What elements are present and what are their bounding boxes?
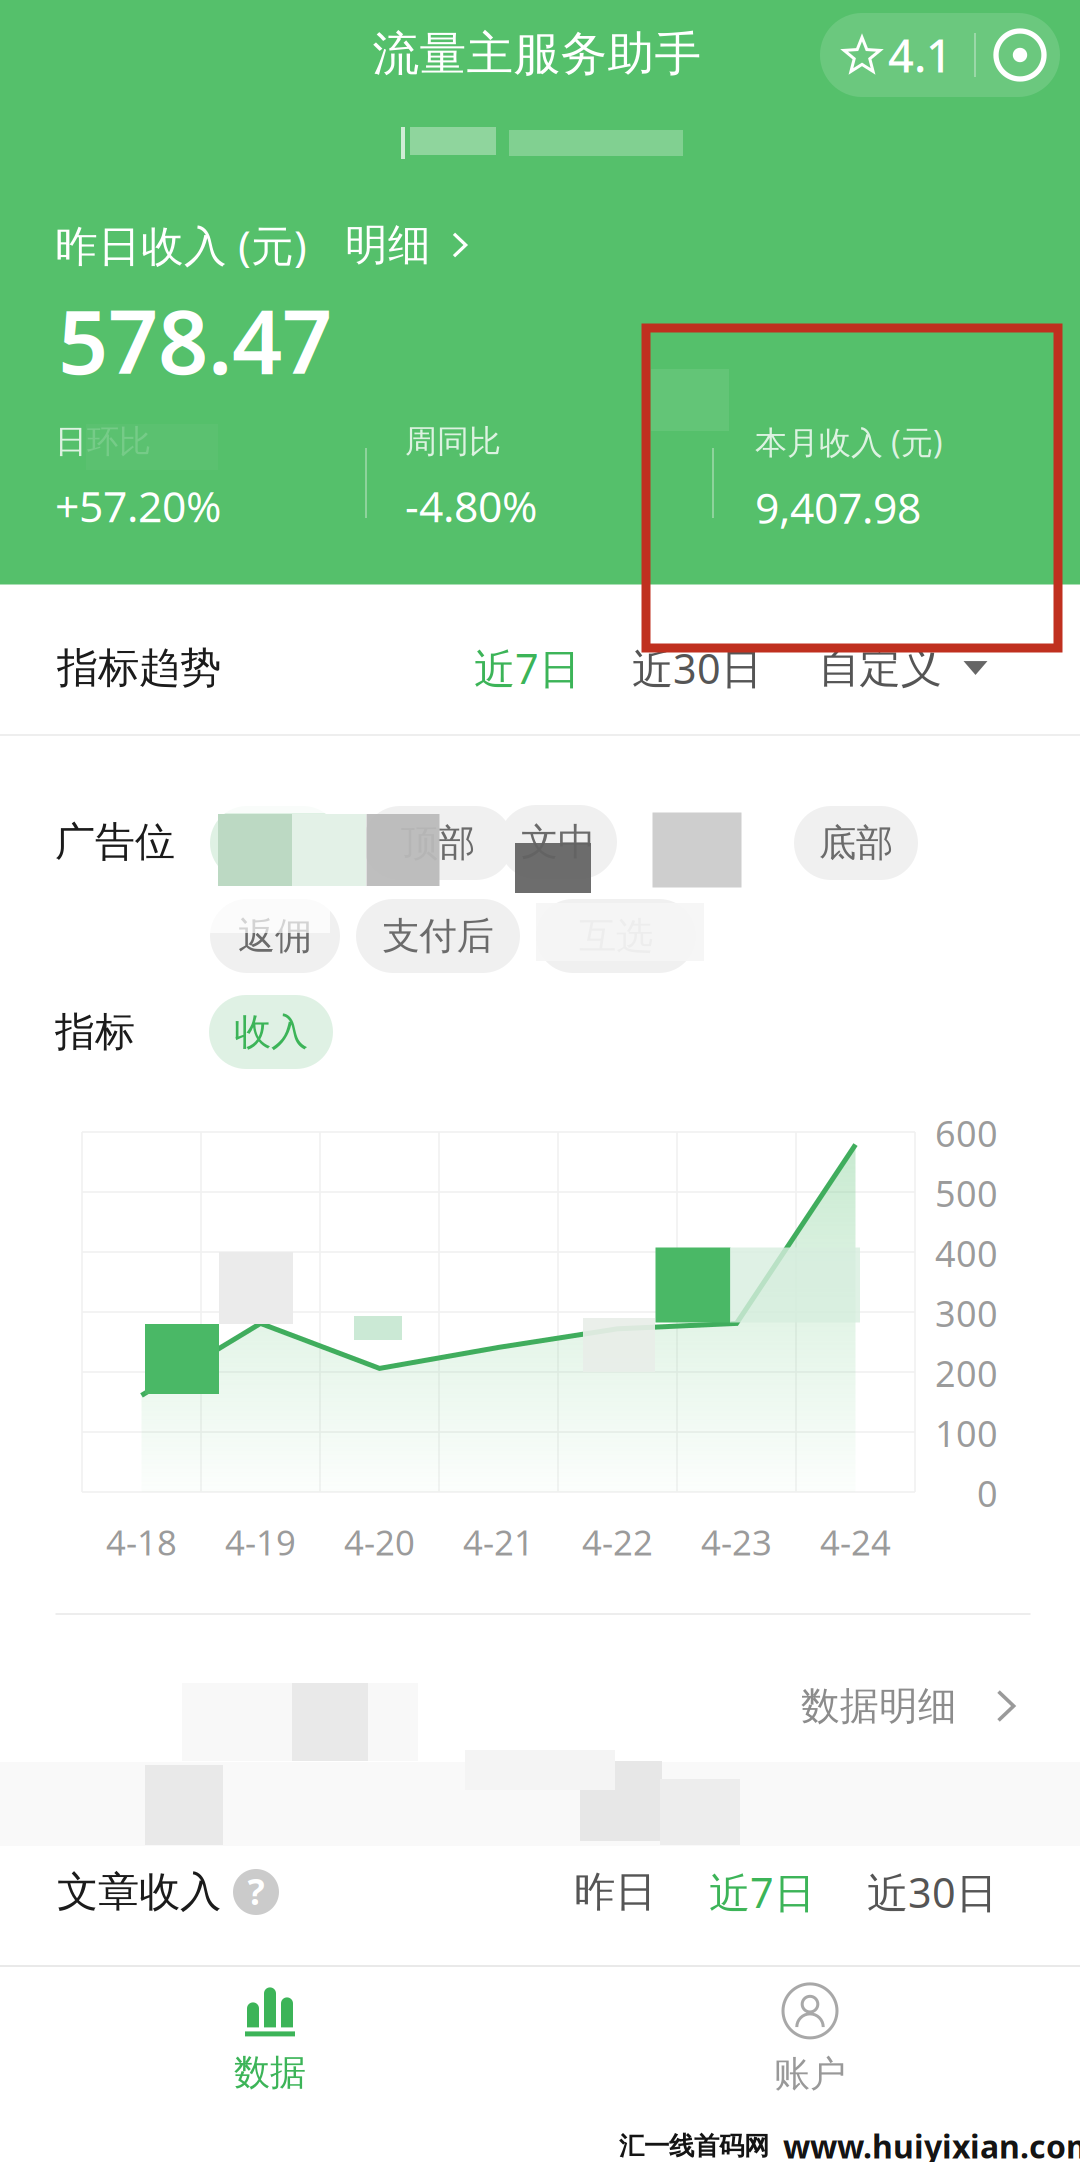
staticText: 200 — [935, 1349, 998, 1397]
staticText: 数据 — [234, 2050, 306, 2095]
staticText: -4.80% — [405, 477, 537, 534]
staticText: 近30日 — [867, 1865, 997, 1919]
staticText: 文中 — [521, 819, 595, 865]
staticText: 600 — [935, 1109, 998, 1157]
button[interactable]: 账户 — [660, 1975, 960, 2105]
staticText: 昨日 — [574, 1867, 656, 1917]
staticText: 自定义 — [818, 643, 941, 693]
staticText: 300 — [935, 1289, 998, 1337]
staticText: 数据明细 — [801, 1682, 957, 1730]
staticText: 近7日 — [709, 1865, 815, 1919]
button[interactable]: 全部 — [210, 806, 340, 880]
staticText: 流量主服务助手 — [372, 25, 701, 83]
staticText: ? — [247, 1867, 264, 1915]
staticText: 4-24 — [820, 1519, 891, 1565]
button[interactable]: 互选 — [536, 899, 696, 973]
button[interactable]: 顶部 — [363, 806, 513, 880]
button[interactable]: 返佣 — [210, 899, 340, 973]
staticText: 4-18 — [106, 1519, 177, 1565]
button[interactable]: 昨日 — [560, 1857, 670, 1927]
staticText: 全部 — [238, 820, 312, 866]
button[interactable]: Help — [233, 1869, 279, 1915]
button[interactable]: 支付后 — [356, 899, 520, 973]
staticText: 支付后 — [382, 913, 493, 959]
button[interactable]: 近7日 — [702, 1857, 822, 1927]
staticText: 明细 — [345, 219, 431, 271]
staticText: 578.47 — [58, 282, 332, 398]
staticText: 4.1 — [888, 25, 952, 85]
staticText: 指标 — [55, 1007, 135, 1056]
button[interactable]: 自定义 — [808, 633, 998, 703]
staticText: 底部 — [819, 820, 893, 866]
staticText: 日环比 — [55, 422, 151, 461]
staticText: 周同比 — [405, 422, 501, 461]
button[interactable]: 近30日 — [622, 633, 772, 703]
staticText: 100 — [935, 1409, 998, 1457]
button[interactable]: 底部 — [794, 806, 918, 880]
button[interactable]: 近7日 — [467, 633, 587, 703]
staticText: 广告位 — [55, 817, 175, 866]
staticText: 近30日 — [632, 641, 762, 695]
staticText: 500 — [935, 1169, 998, 1217]
button[interactable]: 数据明细 — [783, 1671, 1023, 1741]
button[interactable]: 近30日 — [857, 1857, 1007, 1927]
staticText: www.huiyixian.com — [783, 2125, 1080, 2162]
button[interactable]: 数据 — [120, 1975, 420, 2105]
staticText: +57.20% — [55, 477, 221, 534]
staticText: 昨日收入 (元) — [55, 217, 307, 273]
staticText: 0 — [977, 1469, 998, 1517]
staticText: 返佣 — [238, 913, 312, 959]
staticText: 近7日 — [474, 641, 580, 695]
staticText: 账户 — [774, 2052, 846, 2096]
button[interactable]: 昨日收入 (元) — [55, 215, 485, 275]
staticText: 文章收入 — [57, 1867, 221, 1917]
staticText: 4-21 — [463, 1519, 534, 1565]
button[interactable]: Rating 4.1 and menu — [820, 13, 1060, 97]
staticText: 400 — [935, 1229, 998, 1277]
staticText: 4-19 — [225, 1519, 296, 1565]
staticText: 4-20 — [344, 1519, 415, 1565]
button[interactable]: 文中 — [499, 805, 617, 879]
staticText: 收入 — [234, 1009, 308, 1055]
staticText: 汇一线首码网 — [619, 2130, 769, 2161]
staticText: 指标趋势 — [57, 643, 221, 693]
staticText: 9,407.98 — [755, 479, 921, 536]
staticText: 4-23 — [701, 1519, 772, 1565]
staticText: 4-22 — [582, 1519, 653, 1565]
staticText: 顶部 — [401, 820, 475, 866]
button[interactable]: 收入 — [209, 995, 333, 1069]
staticText: 本月收入 (元) — [755, 420, 943, 463]
